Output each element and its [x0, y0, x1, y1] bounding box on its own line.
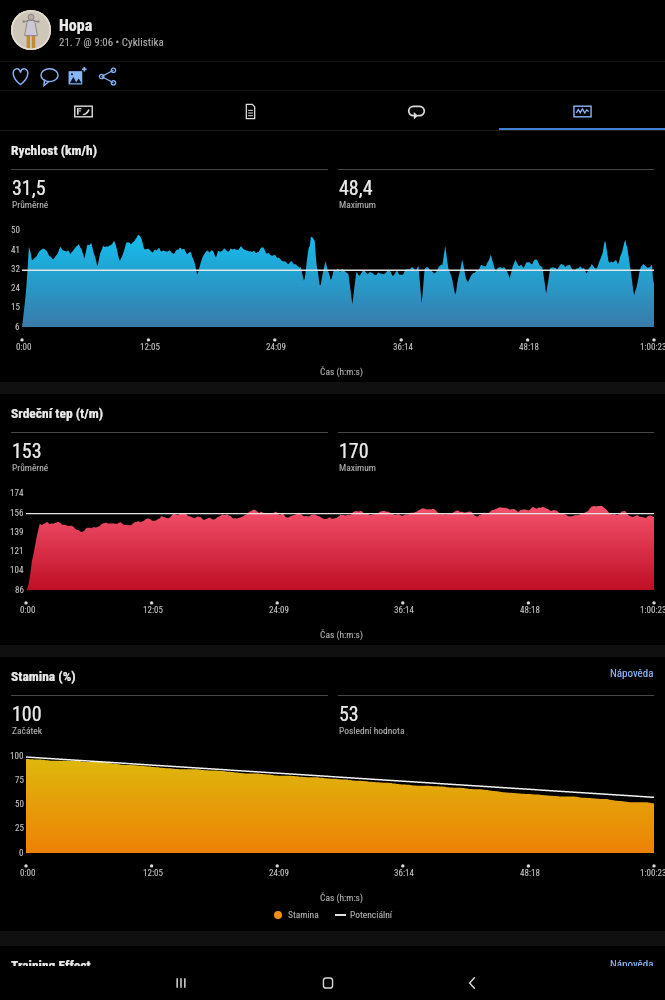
- staticText: 36:14: [394, 868, 414, 879]
- button[interactable]: Charts: [499, 93, 665, 131]
- staticText: Průměrné: [12, 462, 49, 473]
- button[interactable]: Laps: [333, 93, 499, 131]
- staticText: Nápověda: [610, 958, 654, 971]
- staticText: Maximum: [339, 199, 376, 210]
- staticText: Hopa: [59, 16, 93, 35]
- staticText: 0: [19, 848, 24, 859]
- staticText: 48:18: [520, 605, 540, 616]
- button[interactable]: Nápověda: [610, 667, 654, 680]
- staticText: 50: [15, 799, 24, 810]
- staticText: 32: [11, 264, 20, 275]
- staticText: Potenciální: [350, 909, 392, 920]
- button[interactable]: Share: [93, 62, 121, 90]
- staticText: 36:14: [394, 605, 414, 616]
- staticText: 100: [10, 751, 24, 762]
- staticText: 24:09: [266, 342, 286, 353]
- staticText: 24:09: [269, 605, 289, 616]
- button[interactable]: Details: [167, 93, 333, 131]
- staticText: 1:00:23: [640, 868, 665, 879]
- staticText: 104: [10, 565, 24, 576]
- staticText: 6: [15, 322, 20, 333]
- staticText: 53: [339, 702, 359, 725]
- staticText: 0:00: [16, 342, 32, 353]
- button[interactable]: Comment: [35, 62, 63, 90]
- button[interactable]: Map: [0, 93, 167, 131]
- staticText: Průměrné: [12, 199, 49, 210]
- staticText: 36:14: [393, 342, 413, 353]
- staticText: 100: [12, 702, 42, 725]
- staticText: 1:00:23: [640, 342, 665, 353]
- button[interactable]: Recents: [165, 966, 197, 1000]
- staticText: Stamina: [288, 909, 319, 920]
- staticText: 12:05: [143, 868, 163, 879]
- button[interactable]: Back: [456, 966, 488, 1000]
- staticText: Stamina (%): [11, 668, 76, 684]
- staticText: 0:00: [20, 868, 36, 879]
- staticText: 31,5: [12, 176, 46, 199]
- button[interactable]: Profile photo: [11, 10, 51, 50]
- staticText: 48:18: [519, 342, 539, 353]
- staticText: 50: [11, 225, 20, 236]
- staticText: 174: [10, 488, 24, 499]
- staticText: Rychlost (km/h): [11, 142, 98, 158]
- staticText: Čas (h:m:s): [9, 629, 665, 640]
- staticText: 41: [11, 245, 20, 256]
- staticText: 1:00:23: [640, 605, 665, 616]
- button[interactable]: Home: [312, 966, 344, 1000]
- staticText: 25: [15, 823, 24, 834]
- button[interactable]: Add photo: [63, 62, 91, 90]
- staticText: 139: [10, 527, 24, 538]
- staticText: 48:18: [520, 868, 540, 879]
- staticText: 170: [339, 439, 369, 462]
- staticText: 0:00: [20, 605, 36, 616]
- staticText: 24:09: [269, 868, 289, 879]
- staticText: Srdeční tep (t/m): [11, 405, 104, 421]
- staticText: 12:05: [143, 605, 163, 616]
- staticText: 86: [15, 585, 24, 596]
- staticText: 48,4: [339, 176, 373, 199]
- staticText: 15: [11, 302, 20, 313]
- staticText: 121: [10, 546, 24, 557]
- staticText: Training Effect: [11, 957, 91, 973]
- staticText: 21. 7 @ 9:06 • Cyklistika: [59, 36, 164, 49]
- button[interactable]: Like: [6, 62, 34, 90]
- staticText: Začátek: [12, 725, 43, 736]
- staticText: 156: [10, 508, 24, 519]
- staticText: 12:05: [140, 342, 160, 353]
- staticText: Maximum: [339, 462, 376, 473]
- staticText: Poslední hodnota: [339, 725, 405, 736]
- staticText: 75: [15, 775, 24, 786]
- staticText: Čas (h:m:s): [9, 366, 665, 377]
- staticText: 153: [12, 439, 42, 462]
- staticText: 24: [11, 283, 20, 294]
- staticText: Čas (h:m:s): [9, 892, 665, 903]
- staticText: Nápověda: [610, 667, 654, 680]
